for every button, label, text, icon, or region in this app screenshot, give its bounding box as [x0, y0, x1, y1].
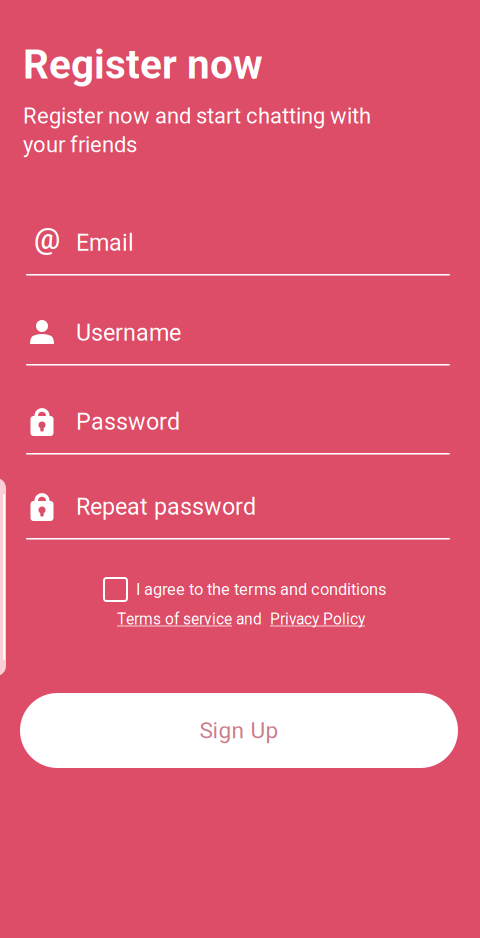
staticText: Password: [76, 408, 180, 435]
button[interactable]: Password: [26, 407, 454, 465]
staticText: Register now: [23, 41, 263, 88]
button[interactable]: I agree to the terms and conditions: [104, 578, 127, 601]
staticText: Sign Up: [199, 717, 278, 744]
button[interactable]: Repeat password: [26, 492, 454, 550]
button[interactable]: Username: [26, 318, 454, 376]
staticText: Terms of service: [117, 610, 232, 628]
staticText: Register now and start chatting with you…: [23, 103, 371, 158]
staticText: and: [232, 610, 270, 628]
staticText: Email: [76, 229, 134, 256]
button[interactable]: @: [26, 228, 454, 286]
button[interactable]: Terms of service: [117, 610, 232, 628]
staticText: Repeat password: [76, 493, 256, 520]
button[interactable]: Sign Up: [20, 693, 458, 768]
staticText: Privacy Policy: [270, 610, 365, 628]
staticText: @: [34, 222, 60, 256]
staticText: I agree to the terms and conditions: [136, 580, 386, 599]
button[interactable]: Privacy Policy: [270, 610, 365, 628]
staticText: Username: [76, 319, 181, 346]
